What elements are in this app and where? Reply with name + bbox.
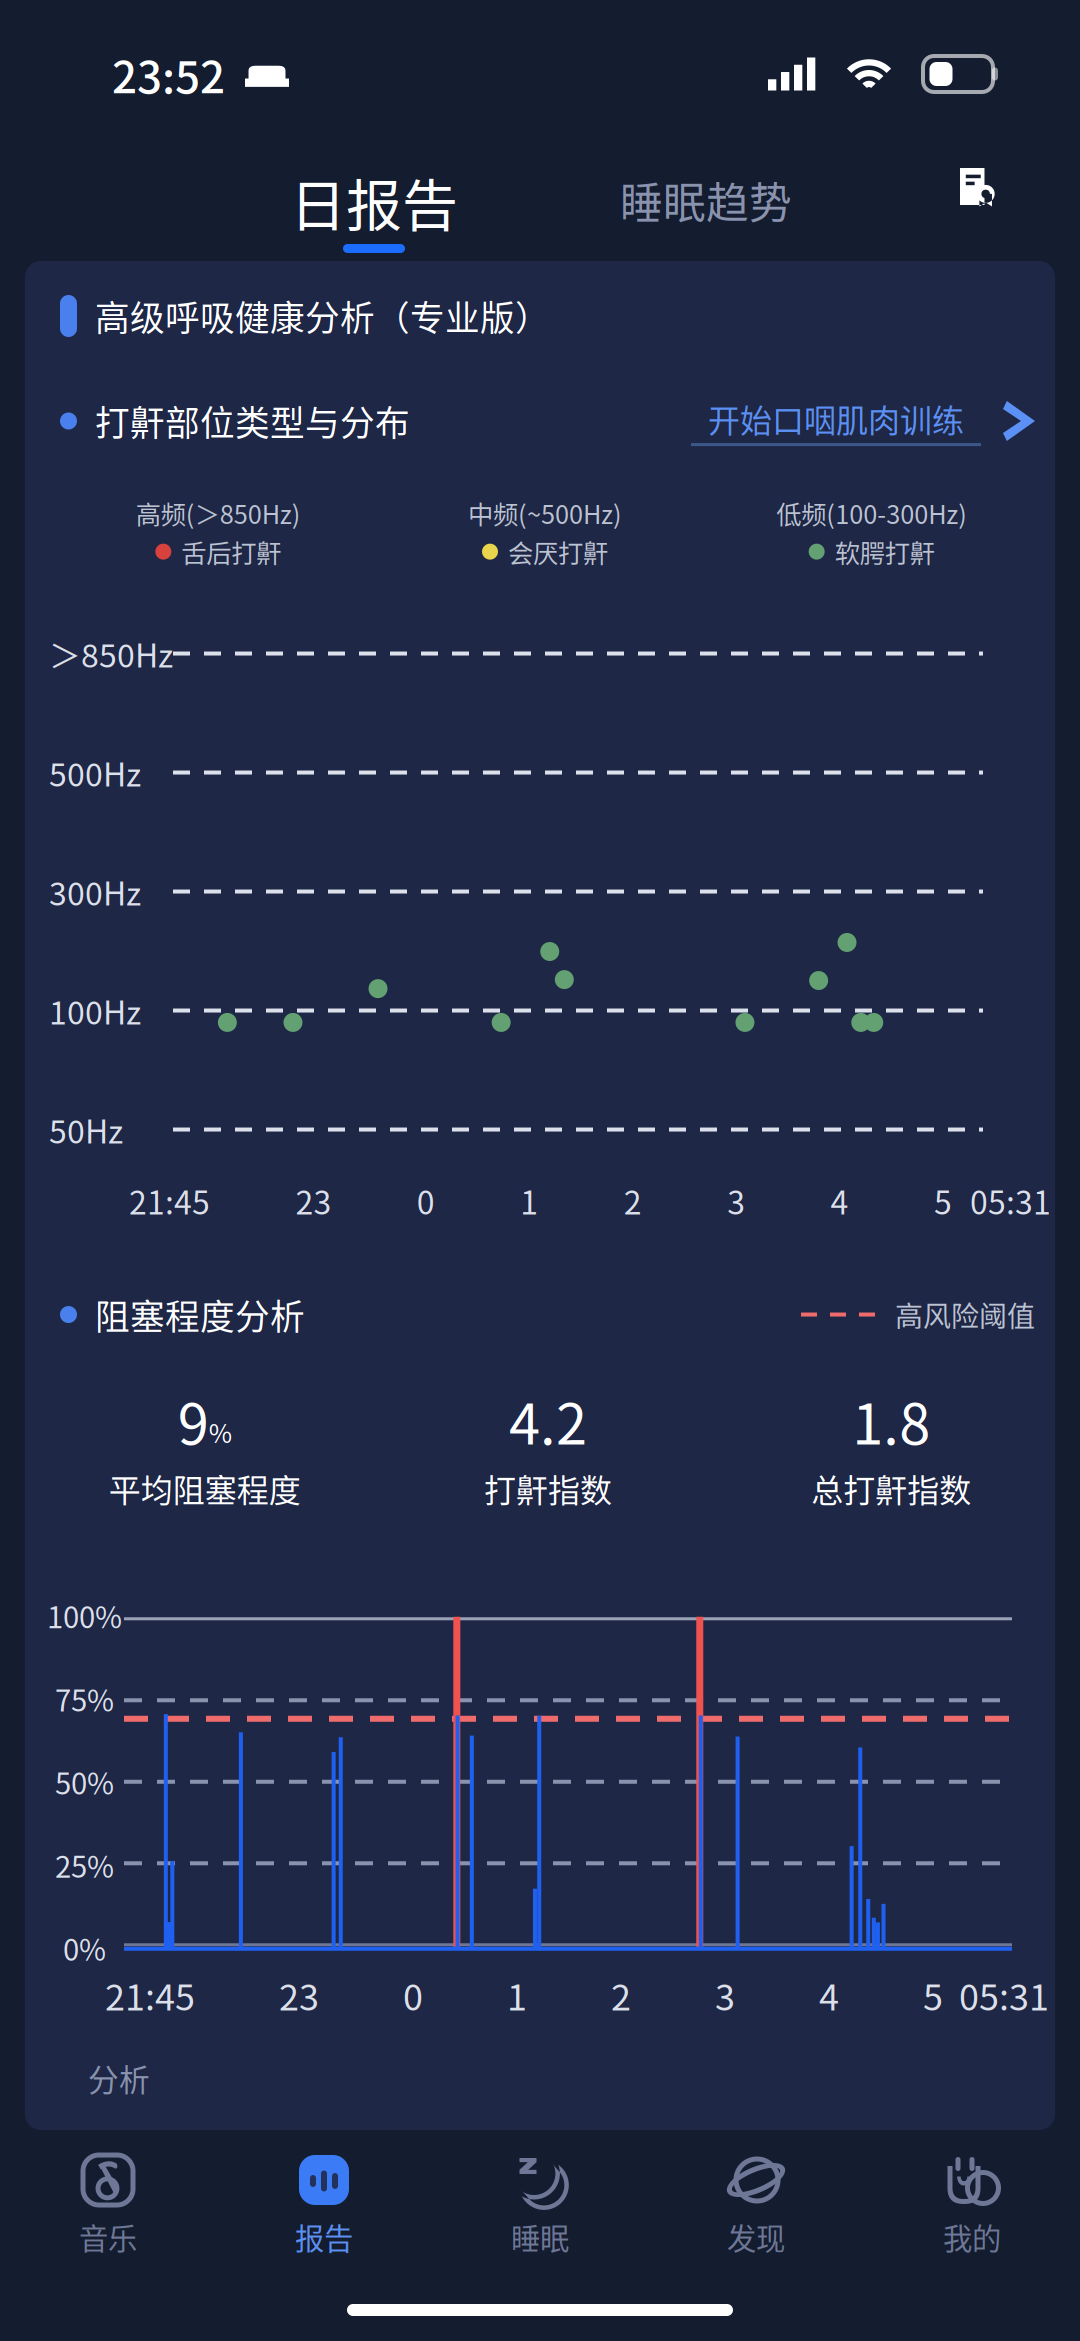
staticText: %	[209, 1414, 232, 1450]
staticText: 低频(100-300Hz)	[776, 495, 967, 531]
staticText: 我的	[943, 2216, 1001, 2257]
staticText: 25%	[55, 1844, 114, 1886]
staticText: 500Hz	[49, 750, 141, 795]
staticText: 会厌打鼾	[508, 534, 608, 570]
staticText: 5	[923, 1969, 943, 2020]
staticText: 平均阻塞程度	[109, 1466, 301, 1511]
staticText: 1	[520, 1178, 538, 1223]
staticText: 75%	[55, 1678, 114, 1719]
staticText: 100Hz	[49, 988, 141, 1033]
staticText: 高频(＞850Hz)	[136, 495, 301, 531]
staticText: 中频(~500Hz)	[468, 495, 622, 531]
staticText: 1	[507, 1969, 527, 2020]
staticText: 软腭打鼾	[835, 534, 935, 570]
button[interactable]: 开始口咽肌肉训练	[691, 396, 1035, 446]
staticText: 9	[178, 1380, 209, 1460]
staticText: 3	[715, 1969, 735, 2020]
button[interactable]: 报告	[216, 2130, 432, 2270]
staticText: 05:31	[970, 1178, 1051, 1223]
staticText: 2	[611, 1969, 631, 2020]
staticText: 300Hz	[49, 869, 141, 914]
button[interactable]: 睡眠趋势	[620, 148, 792, 261]
button[interactable]: 睡眠	[432, 2130, 648, 2270]
button[interactable]: 音乐	[0, 2130, 216, 2270]
staticText: 音乐	[79, 2216, 137, 2257]
staticText: 3	[727, 1178, 745, 1223]
button[interactable]: Sleep certificate report	[942, 148, 1012, 261]
staticText: 21:45	[105, 1969, 195, 2020]
staticText: 高级呼吸健康分析（专业版）	[95, 291, 550, 340]
staticText: 发现	[727, 2216, 785, 2257]
button[interactable]: 日报告	[290, 148, 458, 261]
staticText: 舌后打鼾	[181, 534, 281, 570]
staticText: 5	[934, 1178, 952, 1223]
staticText: 50Hz	[49, 1107, 123, 1152]
staticText: ＞850Hz	[49, 631, 173, 676]
staticText: 分析	[88, 2056, 150, 2099]
staticText: 0%	[63, 1927, 106, 1969]
staticText: 睡眠	[511, 2216, 569, 2257]
staticText: 05:31	[959, 1969, 1049, 2020]
staticText: 100%	[47, 1595, 122, 1636]
staticText: 23	[295, 1178, 331, 1223]
staticText: 23:52	[112, 43, 225, 105]
staticText: 打鼾部位类型与分布	[95, 396, 410, 445]
button[interactable]: 发现	[648, 2130, 864, 2270]
staticText: 总打鼾指数	[811, 1466, 971, 1511]
staticText: 高风险阈值	[895, 1295, 1035, 1334]
staticText: 21:45	[129, 1178, 210, 1223]
staticText: 打鼾指数	[484, 1466, 612, 1511]
staticText: 1.8	[852, 1380, 930, 1460]
staticText: 50%	[55, 1761, 114, 1802]
staticText: 4	[819, 1969, 839, 2020]
staticText: 2	[624, 1178, 642, 1223]
staticText: 0	[417, 1178, 435, 1223]
staticText: 0	[403, 1969, 423, 2020]
staticText: 睡眠趋势	[620, 170, 792, 230]
staticText: 4.2	[509, 1380, 587, 1460]
staticText: 日报告	[290, 162, 458, 241]
staticText: 阻塞程度分析	[95, 1290, 305, 1339]
staticText: 报告	[295, 2216, 353, 2257]
staticText: 4	[831, 1178, 849, 1223]
staticText: 开始口咽肌肉训练	[708, 396, 964, 441]
staticText: 23	[279, 1969, 319, 2020]
button[interactable]: 我的	[864, 2130, 1080, 2270]
